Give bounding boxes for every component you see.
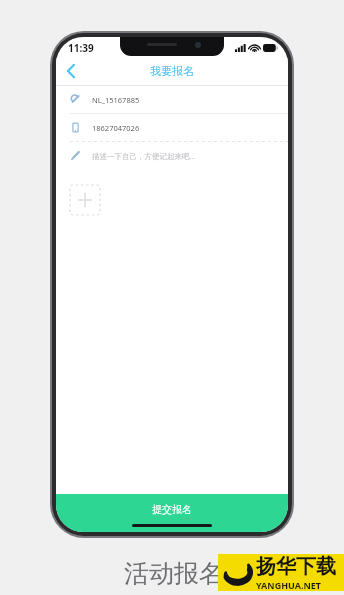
- button[interactable]: Add photo: [70, 185, 100, 215]
- staticText: 18627047026: [92, 123, 140, 133]
- staticText: 我要报名: [150, 64, 194, 78]
- staticText: 提交报名: [152, 503, 192, 516]
- staticText: YANGHUA.NET: [256, 579, 322, 591]
- button[interactable]: 18627047026: [56, 114, 288, 141]
- staticText: 活动报名: [124, 558, 224, 589]
- staticText: 描述一下自己，方便记起来吧...: [92, 151, 196, 161]
- button[interactable]: Back: [56, 57, 86, 85]
- staticText: 扬华下载: [256, 554, 336, 579]
- button[interactable]: NL_15167885: [56, 86, 288, 113]
- button[interactable]: 提交报名: [56, 494, 288, 532]
- staticText: NL_15167885: [92, 95, 140, 105]
- staticText: 11:39: [68, 41, 94, 55]
- button[interactable]: 描述一下自己，方便记起来吧...: [56, 142, 288, 169]
